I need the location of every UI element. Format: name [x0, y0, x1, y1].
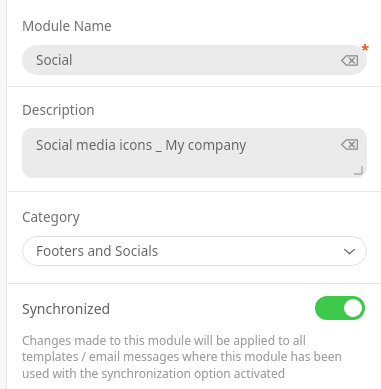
staticText: *: [361, 39, 370, 59]
button[interactable]: Synchronized toggle, on: [315, 296, 365, 320]
button[interactable]: Social: [22, 45, 367, 75]
staticText: Description: [22, 101, 95, 119]
staticText: Social media icons _ My company: [36, 136, 338, 154]
staticText: Synchronized: [22, 299, 315, 318]
staticText: Category: [22, 208, 80, 226]
button[interactable]: Clear Module Name: [338, 49, 360, 71]
button[interactable]: Clear Description: [338, 133, 360, 155]
staticText: Social: [36, 51, 338, 69]
staticText: Footers and Socials: [36, 242, 344, 260]
button[interactable]: Footers and Socials: [22, 236, 367, 266]
staticText: Module Name: [22, 17, 112, 35]
button[interactable]: Social media icons _ My company: [22, 128, 367, 178]
staticText: Changes made to this module will be appl…: [22, 332, 348, 381]
